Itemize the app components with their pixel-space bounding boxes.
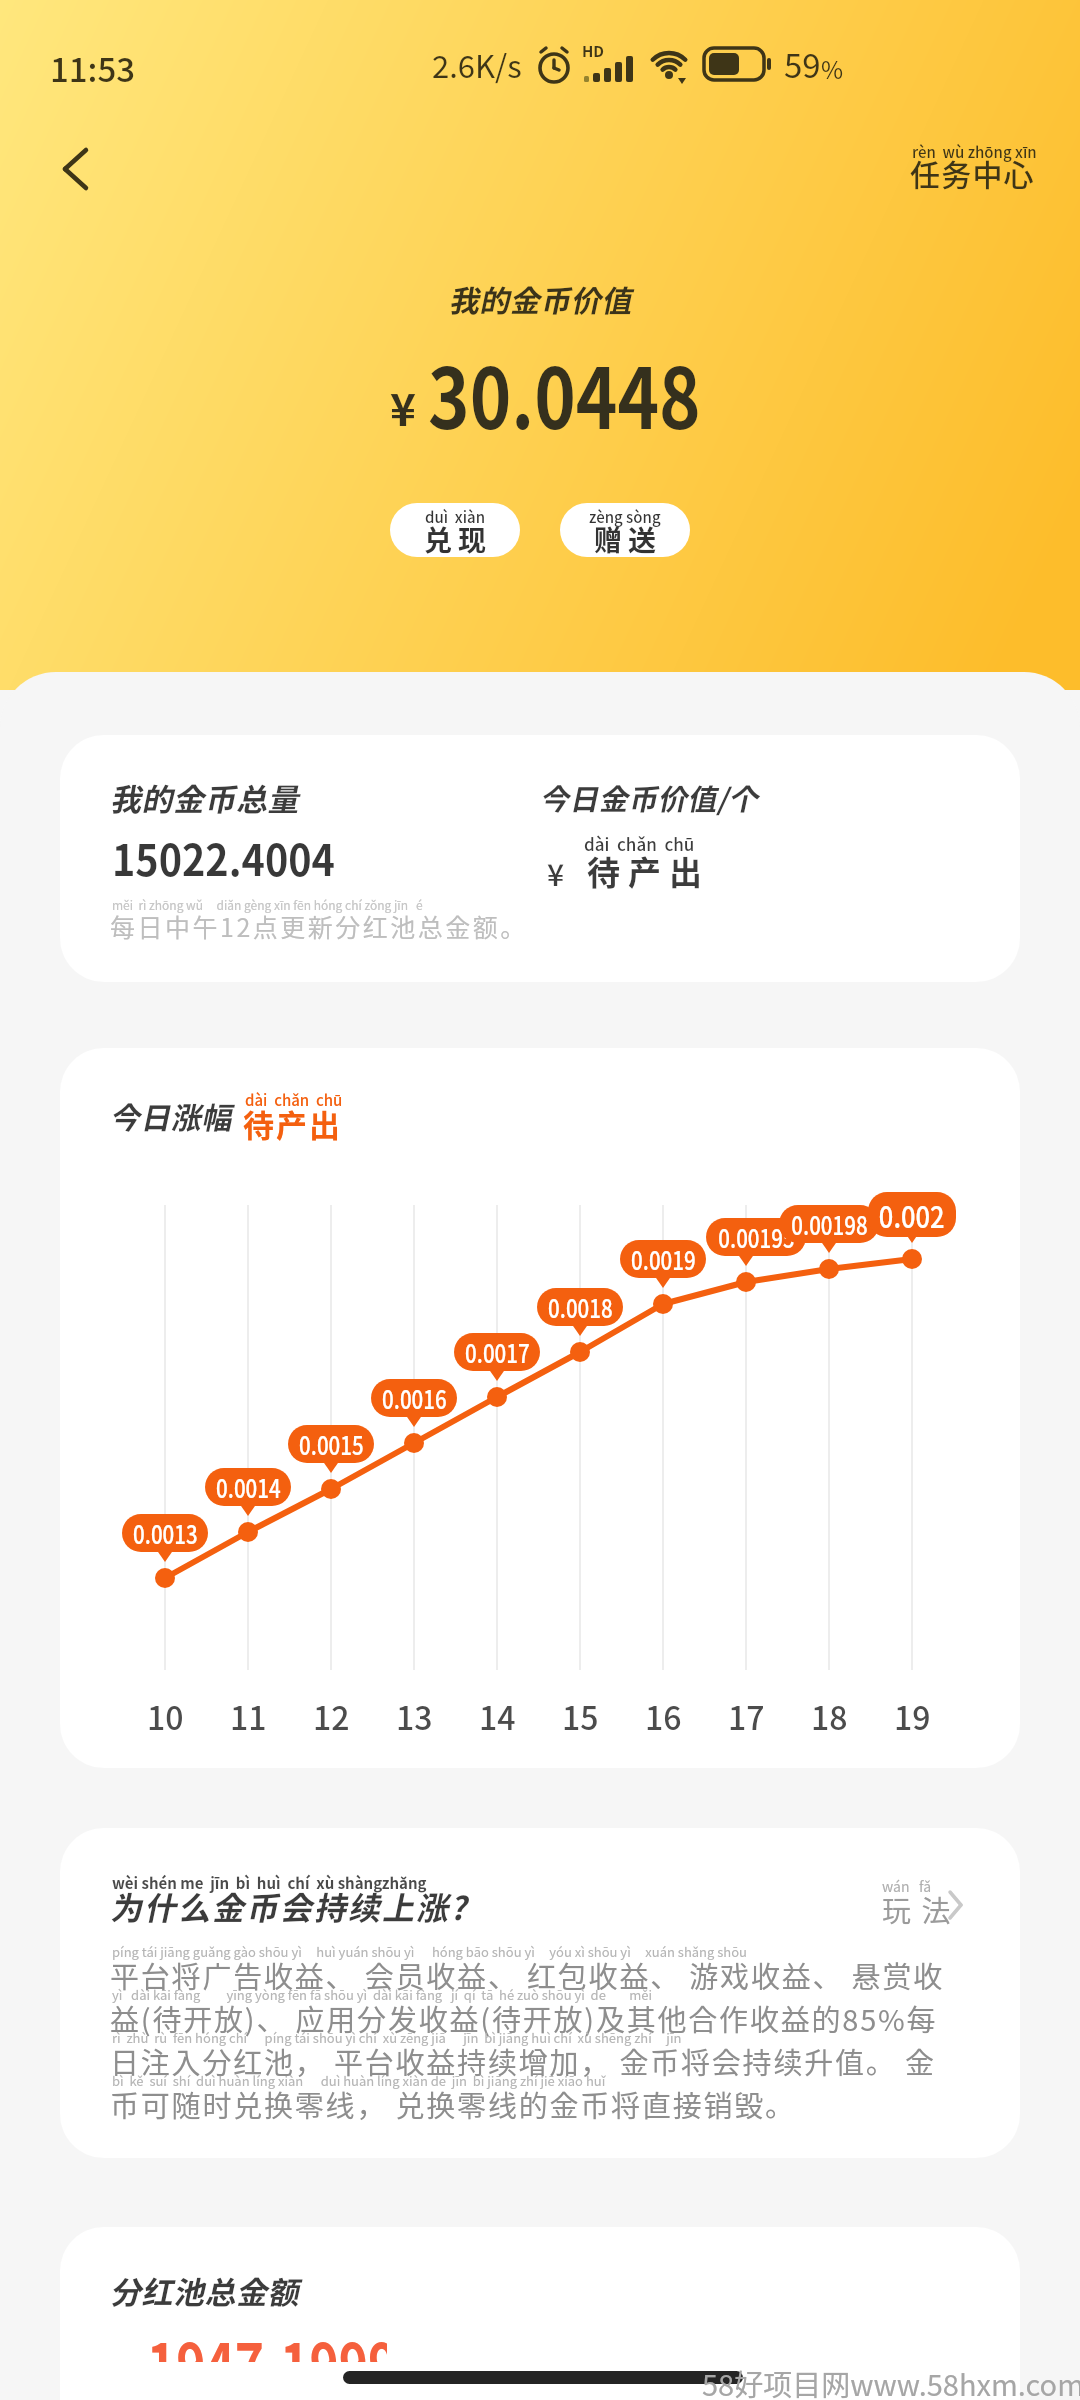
staticText: 0.00195: [718, 1219, 795, 1255]
staticText: 玩 法: [882, 1888, 953, 1930]
staticText: 15: [562, 1693, 599, 1739]
staticText: 11:53: [50, 44, 136, 92]
staticText: 兑现: [424, 519, 493, 557]
staticText: 今日金币价值/个: [540, 776, 759, 818]
button[interactable]: duì xiàn: [390, 503, 520, 557]
staticText: 每日中午12点更新分红池总金额。: [110, 908, 528, 944]
button[interactable]: [44, 138, 108, 202]
staticText: 日注入分红池， 平台收益持续增加， 金币将会持续升值。 金: [110, 2040, 936, 2082]
staticText: 0.0015: [299, 1426, 364, 1462]
staticText: 59: [784, 40, 821, 88]
staticText: 为什么金币会持续上涨?: [110, 1883, 469, 1929]
staticText: ¥: [390, 375, 416, 439]
staticText: 分红池总金额: [110, 2268, 299, 2313]
staticText: dài chǎn chū: [584, 831, 695, 856]
staticText: 12: [313, 1693, 350, 1739]
staticText: píng tái jiāng guǎng gào shōu yì huì yuá…: [112, 1942, 748, 1961]
button[interactable]: rèn wù zhōng xīn: [910, 141, 1040, 197]
staticText: 0.0019: [631, 1241, 696, 1277]
staticText: 10: [147, 1693, 184, 1739]
staticText: 19: [894, 1693, 931, 1739]
staticText: 30.0448: [428, 332, 701, 454]
staticText: 1947.1999: [147, 2317, 387, 2362]
staticText: 11: [230, 1693, 267, 1739]
staticText: 17: [728, 1693, 765, 1739]
staticText: zèng sòng: [589, 506, 661, 528]
staticText: 0.0014: [216, 1469, 281, 1505]
staticText: 18: [811, 1693, 848, 1739]
staticText: 币可随时兑换零线， 兑换零线的金币将直接销毁。: [110, 2083, 796, 2125]
staticText: ¥: [547, 851, 565, 894]
staticText: dài chǎn chū: [245, 1089, 343, 1111]
staticText: 13: [396, 1693, 433, 1739]
staticText: 我的金币总量: [110, 775, 299, 820]
staticText: 16: [645, 1693, 682, 1739]
staticText: 平台将广告收益、 会员收益、 红包收益、 游戏收益、 悬赏收: [110, 1954, 944, 1996]
staticText: 0.0013: [133, 1515, 198, 1551]
staticText: rèn wù zhōng xīn: [912, 141, 1037, 163]
staticText: 我的金币价值: [449, 277, 632, 320]
button[interactable]: wán fǎ: [870, 1874, 970, 1934]
staticText: 0.002: [879, 1193, 945, 1236]
staticText: 0.00198: [791, 1206, 868, 1242]
staticText: 2.6K/s: [432, 42, 522, 87]
staticText: měi rì zhōng wǔ diǎn gèng xīn fēn hóng c…: [112, 896, 423, 913]
staticText: 0.0018: [548, 1289, 613, 1325]
staticText: 0.0017: [465, 1334, 530, 1370]
staticText: %: [821, 51, 844, 86]
staticText: 58好项目网www.58hxm.com: [702, 2362, 1080, 2400]
staticText: duì xiàn: [425, 506, 486, 528]
staticText: 今日涨幅: [110, 1094, 232, 1137]
staticText: 待产出: [243, 1101, 342, 1146]
staticText: 赠送: [594, 519, 663, 557]
staticText: 待产出: [583, 847, 706, 895]
staticText: bì kě suí shí duì huàn líng xiàn duì huà…: [112, 2071, 606, 2090]
staticText: yì dài kāi fàng yīng yòng fēn fā shōu yì…: [112, 1985, 652, 2004]
staticText: 15022.4004: [112, 826, 336, 888]
staticText: 任务中心: [910, 151, 1035, 194]
staticText: wán fǎ: [882, 1876, 932, 1896]
staticText: wèi shén me jīn bì huì chí xù shàngzhǎng: [112, 1872, 427, 1894]
staticText: HD: [582, 40, 605, 62]
staticText: 益(待开放)、 应用分发收益(待开放)及其他合作收益的85%每: [110, 1997, 938, 2039]
staticText: 14: [479, 1693, 516, 1739]
staticText: 0.0016: [382, 1380, 447, 1416]
staticText: rì zhù rù fēn hóng chí píng tái shōu yì …: [112, 2028, 682, 2047]
button[interactable]: zèng sòng: [560, 503, 690, 557]
